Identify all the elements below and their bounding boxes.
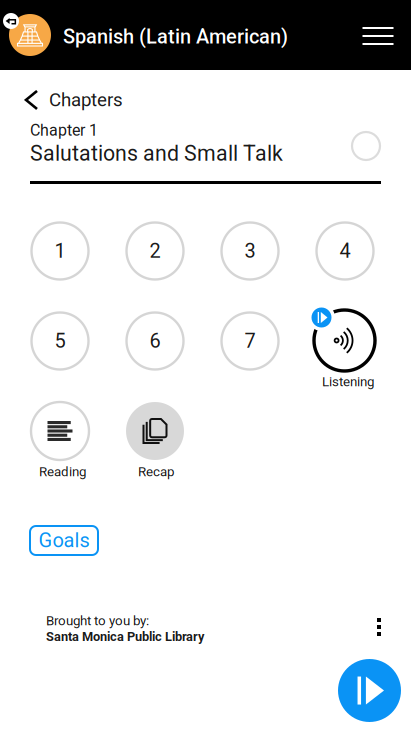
staticText: 1 <box>54 239 65 263</box>
button[interactable]: 2 <box>126 222 183 279</box>
staticText: Santa Monica Public Library <box>46 629 204 644</box>
button[interactable]: Recap <box>126 402 184 460</box>
button[interactable]: 4 <box>316 222 373 279</box>
button[interactable]: Back <box>3 13 19 29</box>
staticText: Goals <box>38 529 89 552</box>
staticText: 7 <box>244 329 255 353</box>
button[interactable]: More options <box>362 610 396 644</box>
staticText: Listening <box>322 374 374 390</box>
staticText: 4 <box>339 239 350 263</box>
staticText: 6 <box>149 329 160 353</box>
button[interactable]: 6 <box>126 312 183 369</box>
staticText: 5 <box>54 329 65 353</box>
button[interactable]: 1 <box>31 222 88 279</box>
staticText: Chapter 1 <box>30 121 98 140</box>
button[interactable]: 5 <box>31 312 88 369</box>
staticText: 2 <box>149 239 160 263</box>
button[interactable]: Chapters <box>20 83 133 117</box>
button[interactable]: 7 <box>221 312 278 369</box>
staticText: Recap <box>138 464 174 480</box>
staticText: Salutations and Small Talk <box>30 141 283 166</box>
button[interactable]: 3 <box>221 222 278 279</box>
button[interactable]: Reading <box>31 402 89 460</box>
button[interactable]: Play <box>338 659 401 722</box>
button[interactable]: Listening <box>314 310 375 371</box>
button[interactable]: Menu <box>356 14 400 58</box>
staticText: Reading <box>39 464 86 480</box>
button[interactable]: Goals <box>30 526 98 555</box>
staticText: Chapters <box>49 89 123 111</box>
staticText: 3 <box>244 239 255 263</box>
staticText: Brought to you by: <box>46 613 149 629</box>
staticText: Spanish (Latin American) <box>63 25 288 48</box>
